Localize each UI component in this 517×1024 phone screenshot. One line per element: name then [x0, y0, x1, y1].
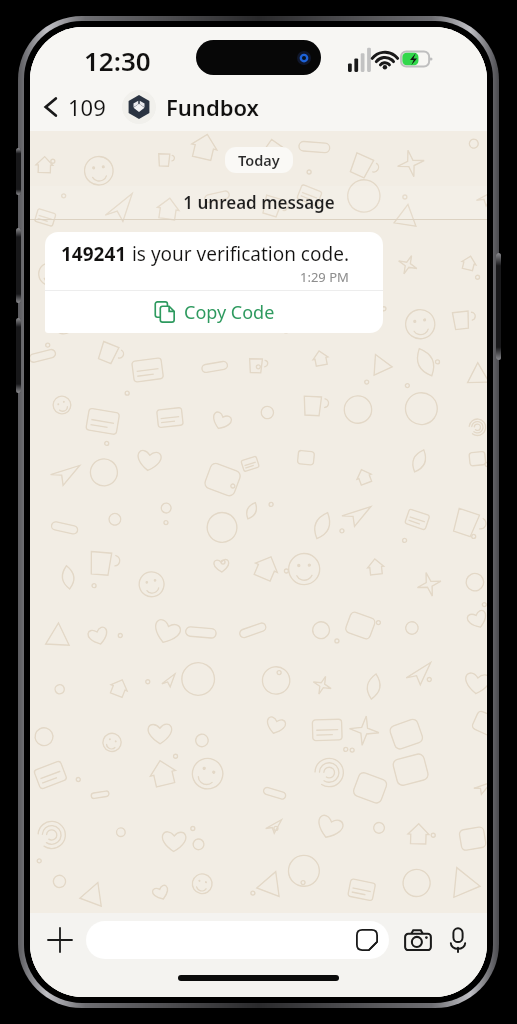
staticText: 1:29 PM — [300, 268, 349, 286]
button[interactable]: Camera — [399, 920, 437, 960]
staticText: 149241 — [61, 241, 127, 267]
staticText: Today — [238, 150, 280, 170]
staticText: is your verification code. — [127, 241, 349, 267]
staticText: Copy Code — [184, 300, 275, 325]
button[interactable]: 109 — [30, 85, 110, 129]
button[interactable]: Voice message — [441, 920, 475, 960]
staticText: 109 — [68, 92, 106, 122]
staticText: 12:30 — [84, 43, 151, 78]
button[interactable]: Attach — [40, 919, 80, 961]
staticText: Fundbox — [166, 92, 259, 122]
button[interactable]: Today — [225, 147, 293, 173]
button[interactable]: Fundbox — [122, 90, 259, 124]
button[interactable]: Copy Code — [45, 291, 383, 333]
other: Stickers — [355, 928, 379, 952]
button[interactable]: Stickers — [86, 921, 389, 959]
staticText: 1 unread message — [183, 191, 335, 214]
